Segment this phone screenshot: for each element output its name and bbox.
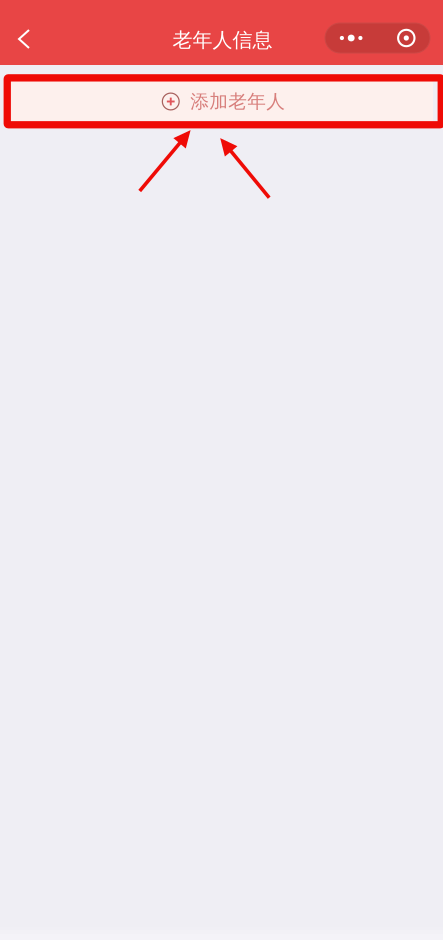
button[interactable]: 更多	[325, 23, 383, 53]
button[interactable]: 添加老年人	[11, 81, 433, 122]
staticText: 添加老年人	[190, 90, 285, 113]
staticText: 老年人信息	[172, 28, 272, 52]
button[interactable]: 返回	[0, 17, 48, 61]
button[interactable]: 关闭	[383, 23, 430, 53]
